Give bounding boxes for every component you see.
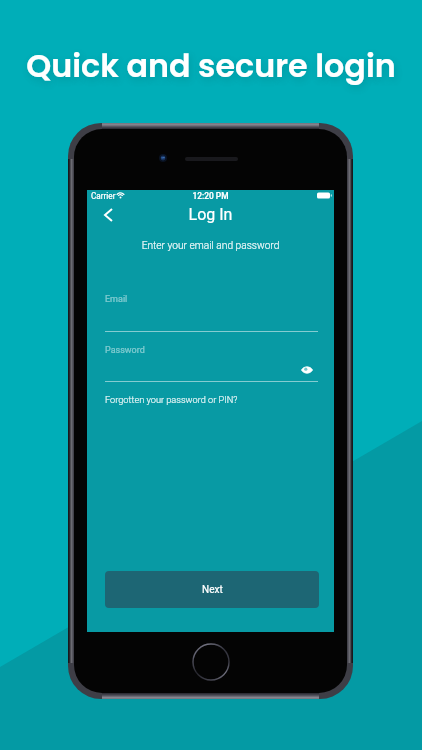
button[interactable]: Forgotten your password or PIN?	[105, 394, 238, 405]
staticText: Next	[202, 584, 223, 596]
button[interactable]: Next	[105, 571, 319, 608]
staticText: Enter your email and password	[87, 240, 334, 252]
staticText: Carrier	[91, 191, 116, 201]
staticText: Log In	[87, 205, 334, 224]
button[interactable]: Show password	[299, 363, 315, 377]
button[interactable]: Back	[98, 203, 122, 227]
staticText: Password	[105, 345, 145, 356]
staticText: Email	[105, 294, 128, 305]
staticText: 12:20 PM	[87, 191, 334, 201]
staticText: Quick and secure login	[0, 44, 422, 89]
